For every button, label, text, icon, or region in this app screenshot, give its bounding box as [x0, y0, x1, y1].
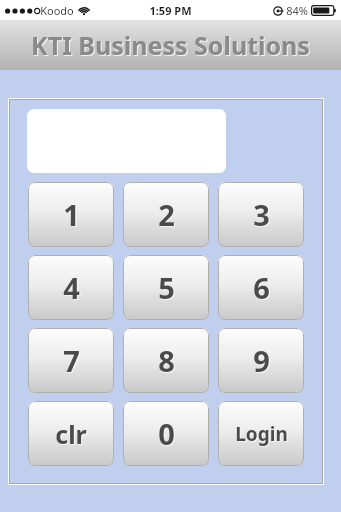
staticText: 3: [253, 195, 270, 234]
staticText: 9: [254, 342, 271, 381]
staticText: Login: [235, 421, 288, 447]
staticText: 1:59 PM: [149, 3, 192, 18]
staticText: Login: [236, 422, 289, 448]
staticText: 6: [254, 269, 271, 308]
button[interactable]: 5: [123, 255, 209, 320]
staticText: 7: [63, 341, 80, 380]
staticText: 4: [63, 268, 80, 307]
staticText: 8: [159, 342, 176, 381]
button[interactable]: 9: [218, 328, 304, 393]
button[interactable]: 6: [218, 255, 304, 320]
staticText: 84%: [286, 3, 308, 18]
staticText: 6: [253, 268, 270, 307]
staticText: 5: [159, 269, 176, 308]
staticText: 3: [254, 196, 271, 235]
button[interactable]: 4: [28, 255, 114, 320]
staticText: KTI Business Solutions: [32, 29, 311, 63]
staticText: 2: [159, 196, 176, 235]
staticText: Koodo: [40, 3, 74, 18]
button[interactable]: 0: [123, 401, 209, 466]
staticText: 5: [158, 268, 175, 307]
staticText: 4: [64, 269, 81, 308]
button[interactable]: 2: [123, 182, 209, 247]
staticText: 8: [158, 341, 175, 380]
button[interactable]: [27, 109, 226, 173]
button[interactable]: clr: [28, 401, 114, 466]
button[interactable]: 8: [123, 328, 209, 393]
staticText: 0: [159, 415, 176, 454]
staticText: KTI Business Solutions: [31, 28, 310, 62]
staticText: clr: [55, 417, 87, 451]
staticText: 9: [253, 341, 270, 380]
staticText: clr: [56, 418, 88, 452]
button[interactable]: 7: [28, 328, 114, 393]
staticText: 1: [63, 195, 80, 234]
staticText: 1: [64, 196, 81, 235]
staticText: 0: [158, 414, 175, 453]
staticText: 2: [158, 195, 175, 234]
button[interactable]: 3: [218, 182, 304, 247]
button[interactable]: 1: [28, 182, 114, 247]
staticText: 7: [64, 342, 81, 381]
button[interactable]: Login: [218, 401, 304, 466]
